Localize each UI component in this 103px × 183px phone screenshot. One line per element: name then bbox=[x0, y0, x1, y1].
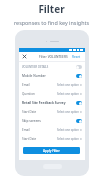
staticText: Select one option bbox=[57, 137, 79, 141]
staticText: VOLUNTEER DETAILS bbox=[22, 65, 49, 69]
staticText: Retail Site Feedback Survey bbox=[22, 101, 66, 105]
staticText: Start Date bbox=[22, 110, 37, 114]
button[interactable]: Reset bbox=[71, 55, 82, 59]
staticText: Skip screens bbox=[22, 119, 41, 123]
staticText: Mobile Number bbox=[22, 74, 46, 78]
button[interactable]: Question bbox=[22, 89, 82, 98]
button[interactable]: Mobile Number bbox=[22, 71, 82, 80]
staticText: Select one option bbox=[57, 83, 79, 87]
staticText: Select one option bbox=[57, 128, 79, 132]
button[interactable]: VOLUNTEER DETAILS bbox=[22, 62, 82, 71]
staticText: responses to find key insights bbox=[14, 19, 89, 26]
button[interactable]: Retail Site Feedback Survey bbox=[22, 98, 82, 107]
staticText: Question bbox=[22, 92, 35, 96]
staticText: Apply Filter bbox=[43, 149, 60, 153]
staticText: Email bbox=[22, 83, 30, 87]
staticText: Filter VOLUNTEERS bbox=[39, 55, 68, 59]
button[interactable]: Close bbox=[22, 54, 27, 59]
staticText: Select one option bbox=[57, 92, 79, 96]
staticText: Start Date bbox=[22, 137, 37, 141]
staticText: Select one option bbox=[57, 110, 79, 114]
button[interactable]: Email bbox=[22, 80, 82, 89]
button[interactable]: Start Date bbox=[22, 134, 82, 143]
staticText: Filter bbox=[38, 2, 65, 16]
button[interactable]: Skip screens bbox=[22, 116, 82, 125]
staticText: Reset bbox=[72, 55, 81, 59]
staticText: Email bbox=[22, 128, 30, 132]
button[interactable]: Email bbox=[22, 125, 82, 134]
button[interactable]: Start Date bbox=[22, 107, 82, 116]
button[interactable]: Apply Filter bbox=[23, 147, 80, 154]
